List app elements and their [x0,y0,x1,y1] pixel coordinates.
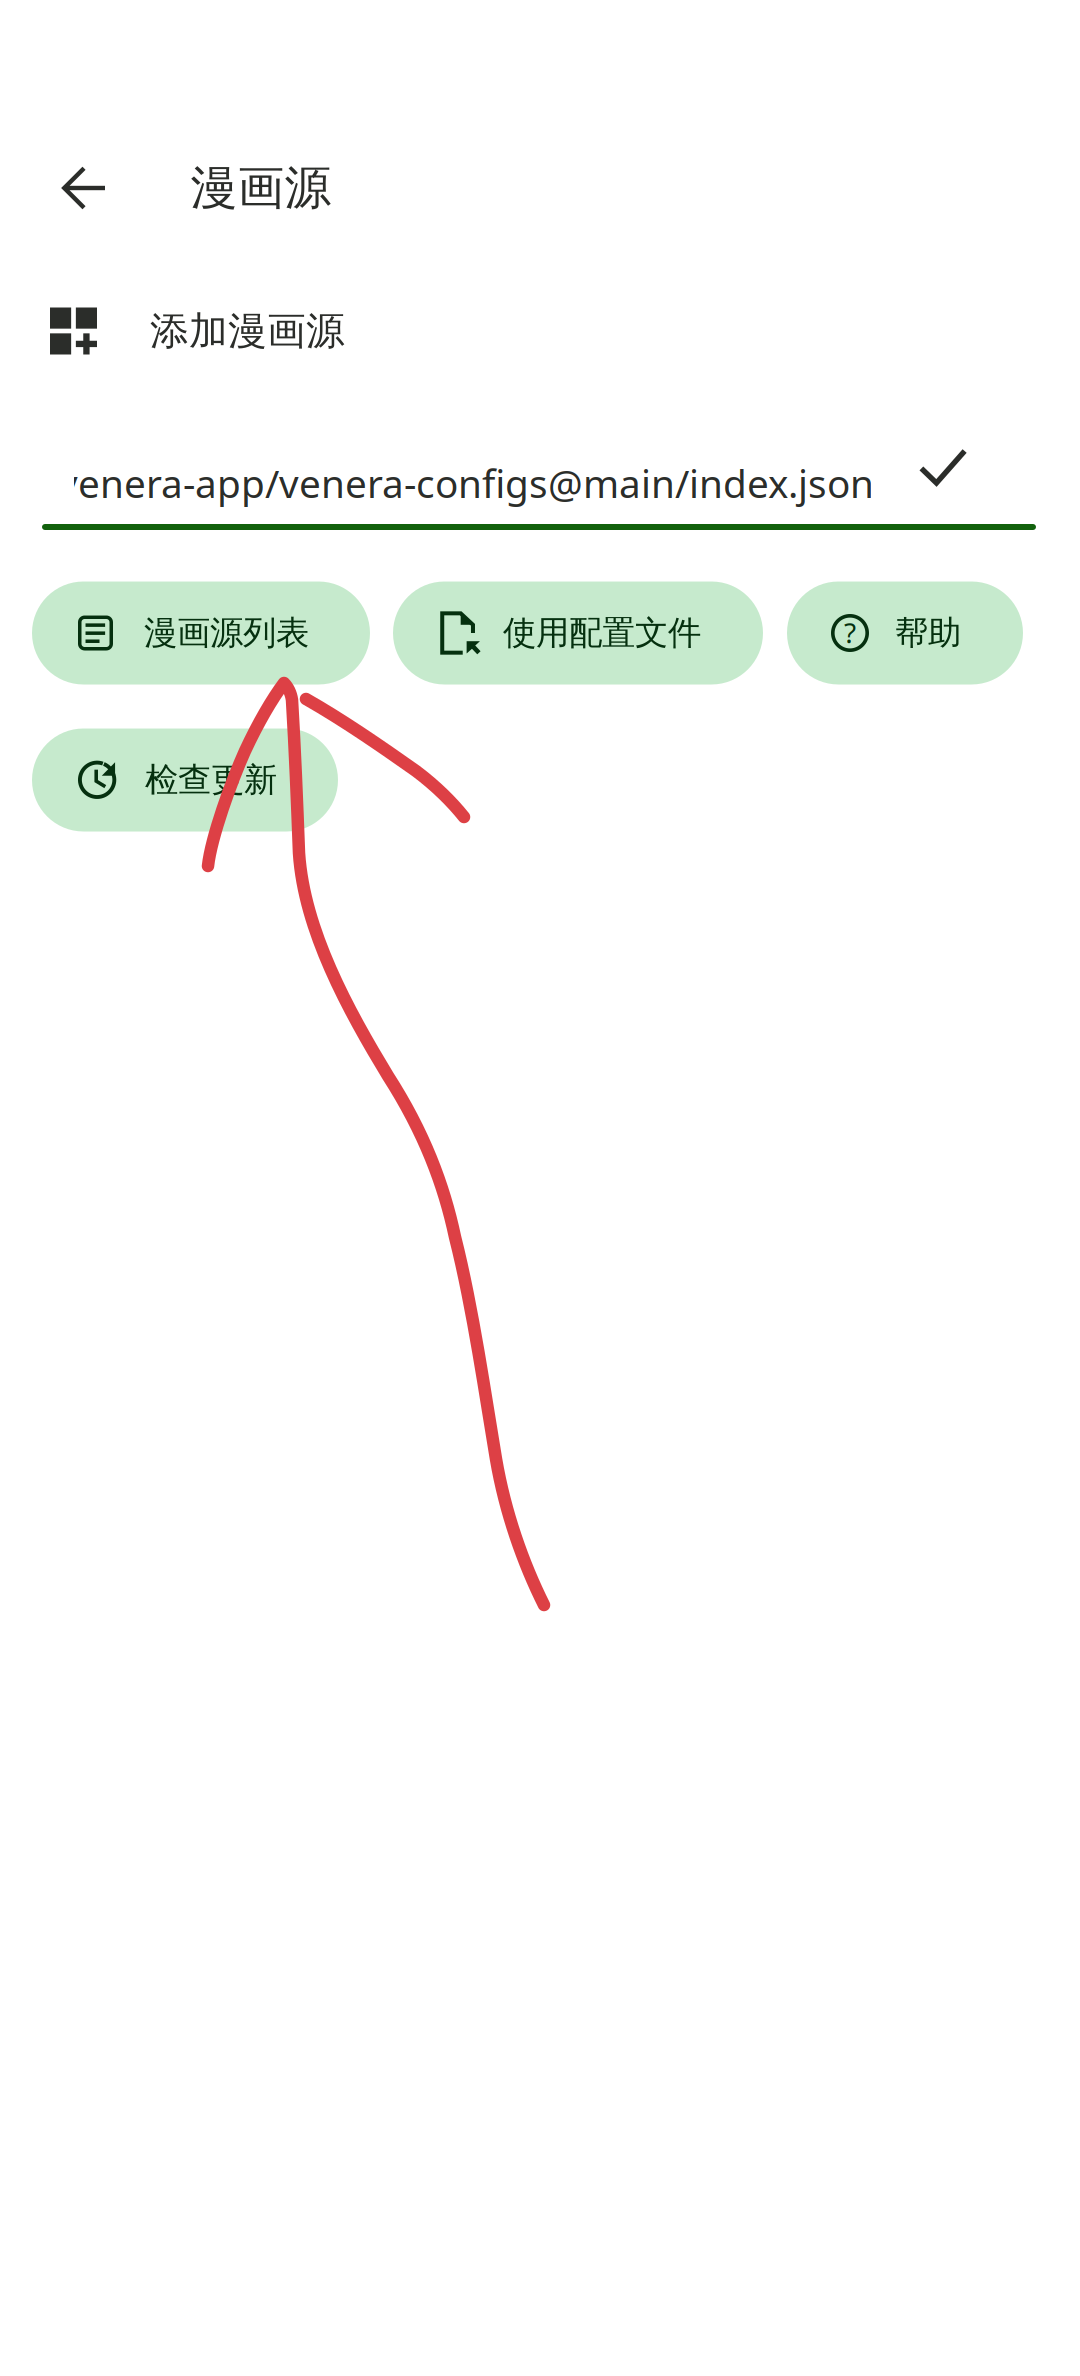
button[interactable]: Back [25,129,143,247]
staticText: 漫画源 [190,159,331,217]
staticText: 帮助 [895,612,961,653]
staticText: 添加漫画源 [150,307,345,355]
button[interactable]: 添加漫画源 [0,283,1080,379]
staticText: 检查更新 [145,759,277,800]
staticText: ? [844,614,856,651]
staticText: 使用配置文件 [503,612,701,653]
button[interactable]: 使用配置文件 [393,581,763,684]
button[interactable]: ? [787,581,1023,684]
button[interactable]: 漫画源列表 [32,581,370,684]
staticText: 漫画源列表 [144,612,309,653]
button[interactable]: Confirm source URL [907,431,979,503]
button[interactable]: 检查更新 [32,728,338,831]
staticText: venera-app/venera-configs@main/index.jso… [58,457,874,509]
